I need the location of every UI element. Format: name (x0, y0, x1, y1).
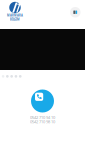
button[interactable]: 0542 710 98 10 (17, 120, 67, 124)
staticText: BİLGİM (10, 18, 20, 21)
staticText: 0542 710 94 10 (30, 115, 55, 120)
staticText: MARMARA (7, 14, 23, 17)
button[interactable]: Language (70, 7, 80, 17)
button[interactable]: Call (31, 89, 54, 112)
staticText: 0542 710 98 10 (30, 119, 55, 124)
button[interactable]: 0542 710 94 10 (17, 115, 67, 120)
